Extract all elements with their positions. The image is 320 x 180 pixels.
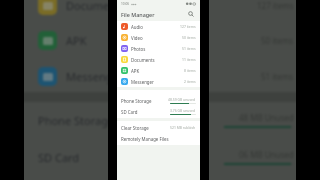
staticText: 127 items — [180, 24, 196, 29]
staticText: 51 items — [182, 46, 196, 51]
staticText: Phone Storage — [121, 98, 152, 104]
staticText: Phone Storage — [38, 113, 115, 128]
button[interactable]: APK — [117, 65, 200, 76]
staticText: 11 items — [182, 57, 196, 62]
button[interactable]: SD Card — [117, 106, 200, 117]
staticText: 50 items — [182, 35, 196, 40]
button[interactable]: Photos — [117, 43, 200, 54]
staticText: 521 MB rubbish — [170, 125, 196, 130]
staticText: 2 items — [184, 79, 196, 84]
button[interactable]: Audio — [117, 21, 200, 32]
staticText: Messenger — [66, 69, 124, 84]
staticText: 48.59 GB unused — [168, 97, 196, 102]
button[interactable]: Documents — [117, 54, 200, 65]
button[interactable]: Clear Storage — [117, 122, 200, 133]
staticText: SD Card — [121, 109, 138, 115]
staticText: Audio — [131, 24, 144, 30]
button[interactable]: Phone Storage — [117, 95, 200, 106]
staticText: Clear Storage — [121, 125, 149, 131]
staticText: Documents — [66, 0, 126, 13]
staticText: 10:06 — [121, 2, 130, 6]
staticText: APK — [66, 33, 87, 48]
staticText: 8 items — [184, 68, 196, 73]
button[interactable]: Search — [186, 9, 196, 19]
staticText: APK — [131, 68, 140, 74]
button[interactable]: Messenger — [117, 76, 200, 87]
staticText: Remotely Manage Files — [121, 136, 169, 142]
button[interactable]: Remotely Manage Files — [117, 133, 200, 144]
button[interactable]: Video — [117, 32, 200, 43]
staticText: Photos — [131, 46, 146, 52]
staticText: Messenger — [131, 79, 154, 85]
staticText: SD Card — [38, 150, 80, 165]
staticText: Documents — [131, 57, 155, 63]
staticText: Video — [131, 35, 143, 41]
staticText: 3.76 GB unused — [170, 108, 196, 113]
staticText: File Manager — [121, 11, 155, 18]
